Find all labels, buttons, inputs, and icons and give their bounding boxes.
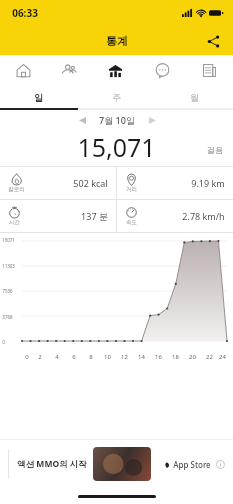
staticText: 22 <box>206 353 213 361</box>
staticText: 06:33 <box>12 6 38 20</box>
staticText: 걸음 <box>207 145 223 155</box>
staticText: 15,071 <box>77 130 156 160</box>
staticText: 속도 <box>126 219 137 226</box>
button[interactable]: Friends <box>46 55 92 86</box>
staticText: 502 kcal <box>73 177 108 189</box>
staticText: 14 <box>138 353 145 361</box>
staticText: 11303 <box>2 263 15 269</box>
staticText: 6 <box>72 353 76 361</box>
button[interactable]: 주 <box>77 86 155 108</box>
staticText: 칼로리 <box>8 186 25 193</box>
staticText: 4 <box>55 353 59 361</box>
button[interactable]: 칼로리 <box>0 167 116 199</box>
button[interactable]: 시간 <box>0 200 116 232</box>
button[interactable]: 액션 MMO의 시작 <box>0 440 233 488</box>
staticText: App Store <box>173 459 211 470</box>
button[interactable]: Ad info <box>215 459 225 469</box>
staticText: 주 <box>112 92 121 103</box>
staticText: 시간 <box>9 219 20 226</box>
staticText: 0 <box>25 353 29 361</box>
staticText: 거리 <box>126 186 137 193</box>
button[interactable]: Chat <box>139 55 186 86</box>
staticText: 10 <box>104 353 111 361</box>
staticText: 7월 10일 <box>99 114 135 126</box>
button[interactable]: 일 <box>0 86 77 108</box>
staticText: 7536 <box>2 288 13 294</box>
button[interactable]: Stats <box>92 55 139 86</box>
staticText: 15071 <box>2 237 15 243</box>
staticText: 0 <box>2 339 5 345</box>
staticText: 액션 MMO의 시작 <box>17 458 87 470</box>
staticText: 월 <box>190 92 199 103</box>
staticText: 20 <box>189 353 196 361</box>
staticText: 2 <box>38 353 42 361</box>
staticText: 3768 <box>2 314 13 320</box>
button[interactable]: Home <box>0 55 46 86</box>
staticText: 2.78 km/h <box>182 210 225 222</box>
button[interactable]: Next day <box>143 111 161 129</box>
staticText: 12 <box>121 353 128 361</box>
button[interactable]: 거리 <box>117 167 233 199</box>
staticText: 9.19 km <box>191 177 225 189</box>
staticText: 16 <box>155 353 162 361</box>
staticText: 8 <box>89 353 93 361</box>
staticText: 24 <box>219 353 226 361</box>
button[interactable]: Previous day <box>73 111 91 129</box>
button[interactable]: News <box>186 55 233 86</box>
staticText: 18 <box>172 353 179 361</box>
staticText: 일 <box>34 92 43 103</box>
button[interactable]: 월 <box>155 86 233 108</box>
staticText: 137 분 <box>81 210 108 222</box>
button[interactable]: 속도 <box>117 200 233 232</box>
staticText: 통계 <box>106 34 128 48</box>
button[interactable]: Share <box>201 29 225 53</box>
